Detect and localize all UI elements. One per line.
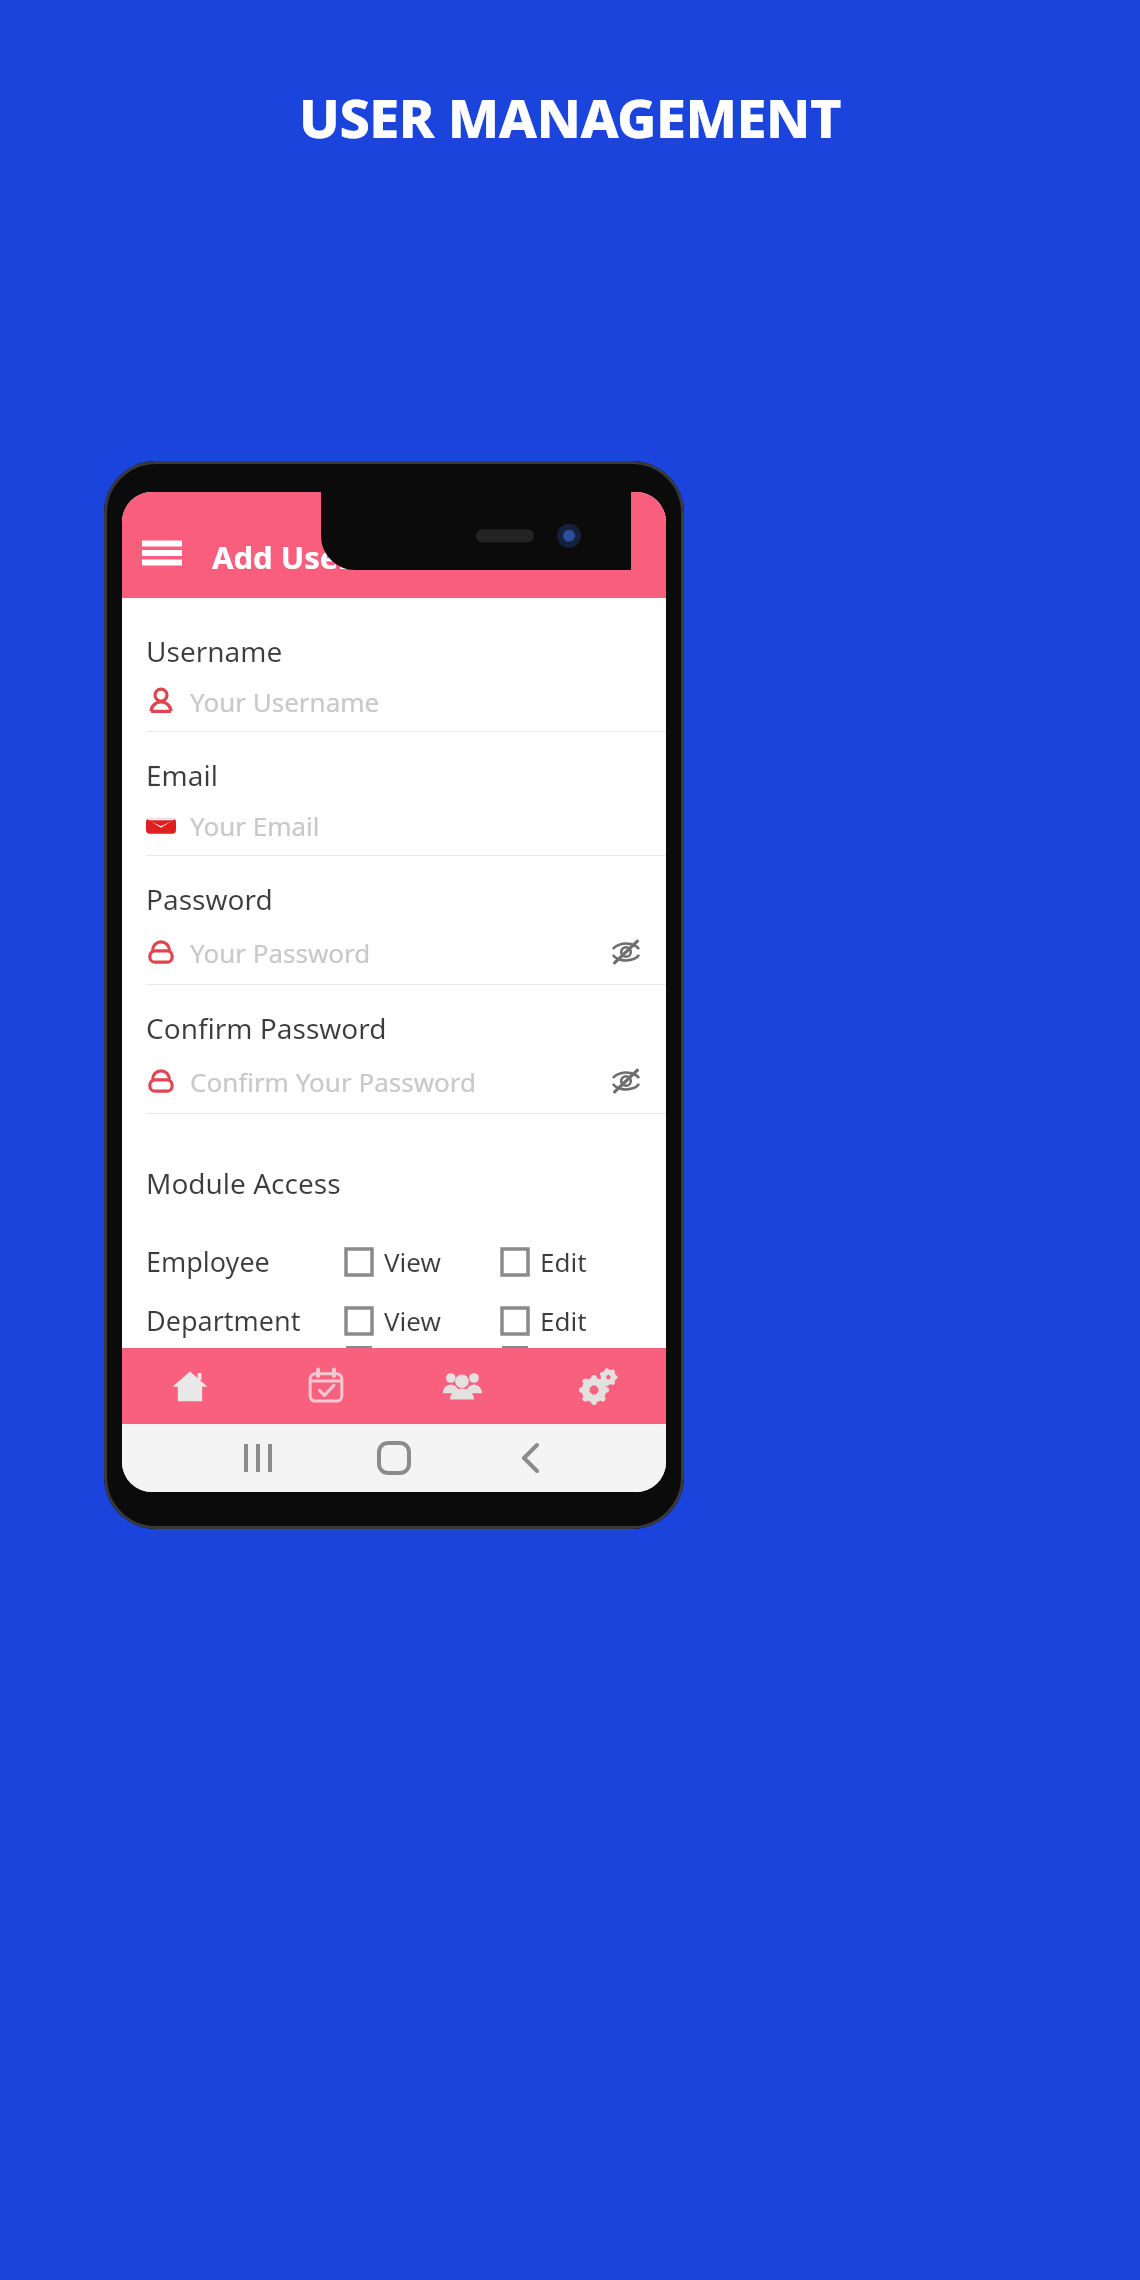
- staticText: Module Access: [146, 1164, 341, 1202]
- staticText: Edit: [540, 1244, 587, 1279]
- button[interactable]: Toggle password visibility: [606, 1061, 646, 1101]
- staticText: Email: [146, 756, 218, 794]
- button[interactable]: Password: [122, 880, 666, 1009]
- button[interactable]: Settings: [530, 1348, 666, 1424]
- staticText: Department: [146, 1302, 346, 1339]
- staticText: Password: [146, 880, 273, 918]
- staticText: Employee: [146, 1243, 346, 1280]
- button[interactable]: Toggle password visibility: [606, 932, 646, 972]
- button[interactable]: Attendance: [258, 1348, 394, 1424]
- staticText: Add User: [212, 536, 353, 578]
- staticText: USER MANAGEMENT: [0, 80, 1140, 154]
- button[interactable]: Email: [122, 756, 666, 880]
- button[interactable]: Users: [394, 1348, 530, 1424]
- button[interactable]: Home: [122, 1348, 258, 1424]
- button[interactable]: View: [346, 1303, 496, 1338]
- button[interactable]: Edit: [502, 1303, 642, 1338]
- staticText: Your Password: [190, 935, 371, 970]
- button[interactable]: Confirm Password: [122, 1009, 666, 1138]
- button[interactable]: View: [346, 1244, 496, 1279]
- button[interactable]: Username: [122, 632, 666, 756]
- button[interactable]: Edit: [502, 1244, 642, 1279]
- staticText: Edit: [540, 1303, 587, 1338]
- staticText: View: [384, 1303, 441, 1338]
- staticText: Your Email: [190, 808, 320, 843]
- button[interactable]: Open navigation menu: [134, 525, 190, 581]
- staticText: Confirm Password: [146, 1009, 387, 1047]
- staticText: Username: [146, 632, 283, 670]
- staticText: Confirm Your Password: [190, 1064, 477, 1099]
- staticText: Your Username: [190, 684, 380, 719]
- staticText: View: [384, 1244, 441, 1279]
